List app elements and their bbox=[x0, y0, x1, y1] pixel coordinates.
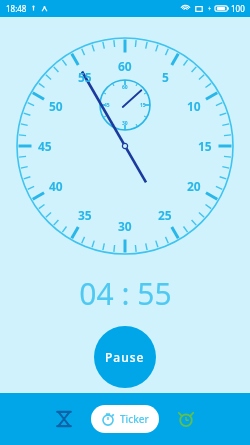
staticText: 15 bbox=[198, 138, 212, 154]
staticText: 30 bbox=[122, 120, 128, 127]
button[interactable]: Ticker bbox=[91, 405, 159, 433]
staticText: 35 bbox=[78, 207, 92, 223]
staticText: 60 bbox=[122, 84, 128, 91]
staticText: 45 bbox=[104, 102, 110, 109]
staticText: Pause bbox=[105, 349, 145, 365]
staticText: 18:48 bbox=[6, 3, 27, 14]
staticText: 55 bbox=[78, 69, 92, 85]
staticText: 40 bbox=[49, 178, 63, 194]
staticText: 60 bbox=[118, 58, 132, 74]
staticText: Ticker bbox=[120, 412, 149, 426]
staticText: 15 bbox=[140, 102, 146, 109]
staticText: 30 bbox=[118, 218, 132, 234]
staticText: 100 bbox=[231, 3, 245, 14]
staticText: 25 bbox=[158, 207, 172, 223]
staticText: 45 bbox=[38, 138, 52, 154]
staticText: 5 bbox=[162, 69, 169, 85]
staticText: 10 bbox=[187, 98, 201, 114]
staticText: 20 bbox=[187, 178, 201, 194]
staticText: 50 bbox=[49, 98, 63, 114]
staticText: 04 : 55 bbox=[79, 273, 172, 314]
button[interactable]: Alarm bbox=[169, 402, 203, 436]
button[interactable]: Timer bbox=[47, 402, 81, 436]
button[interactable]: Pause bbox=[94, 326, 156, 388]
